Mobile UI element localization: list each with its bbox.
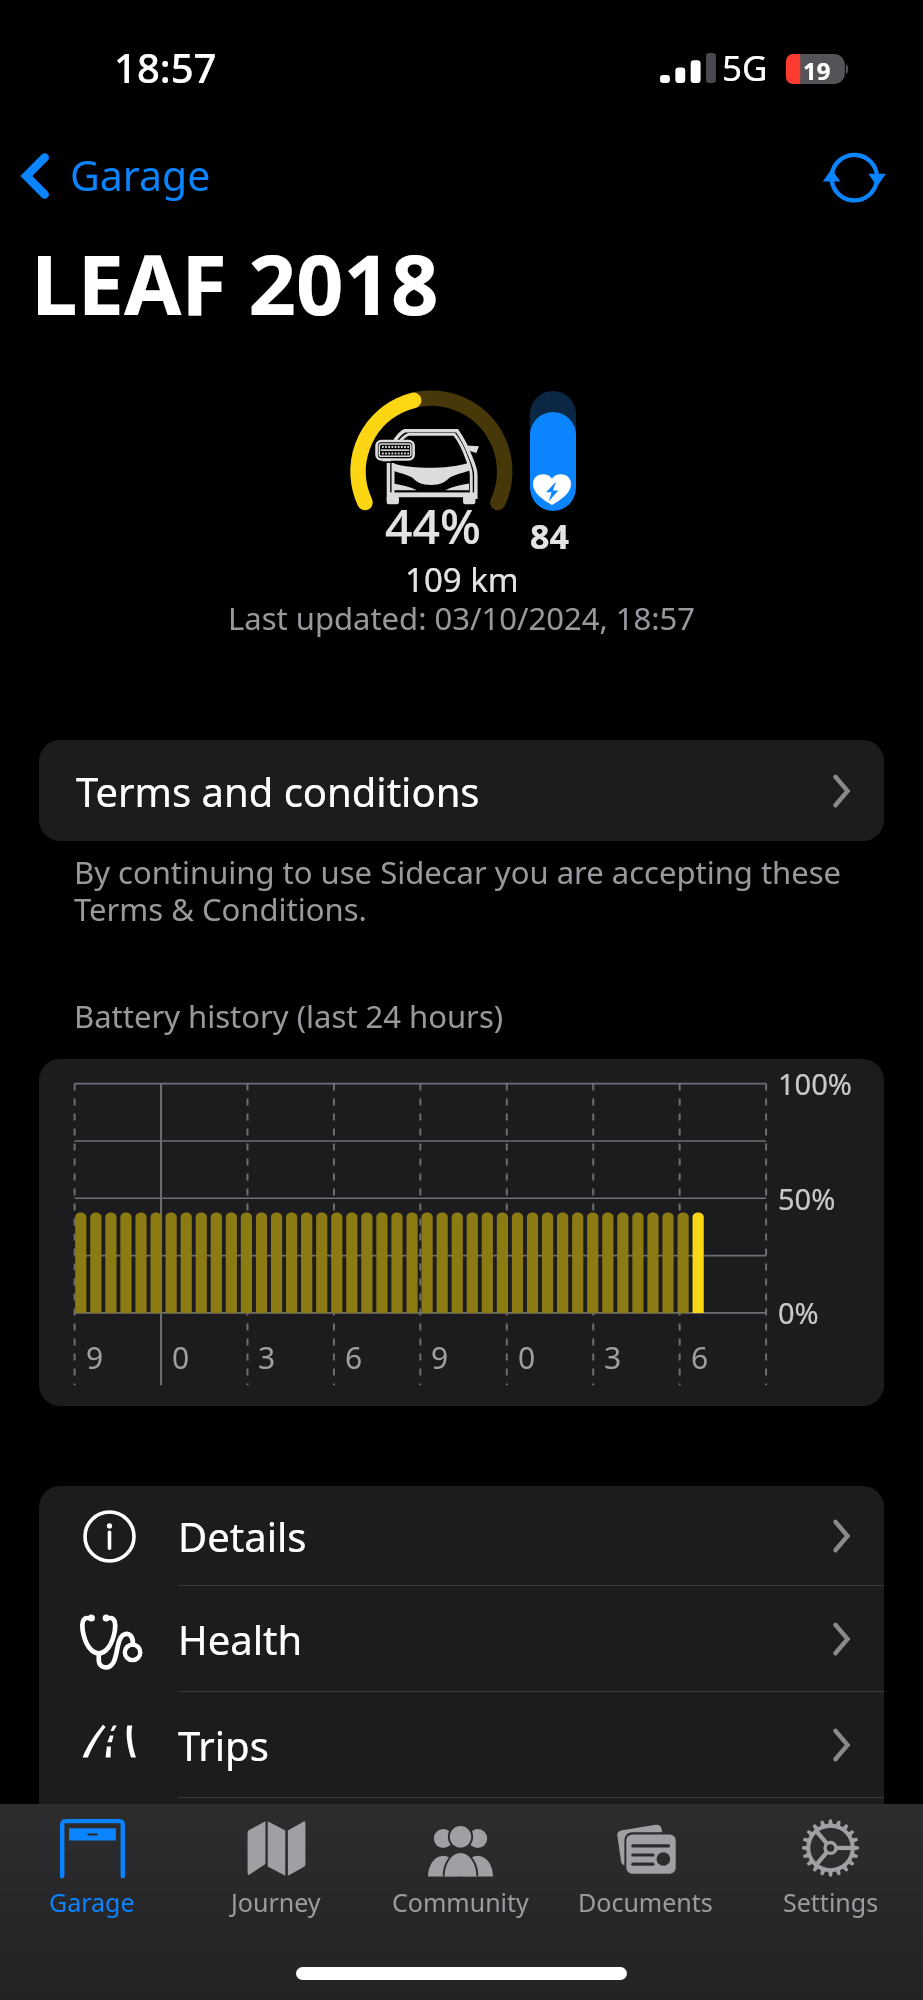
button[interactable]: Garage xyxy=(8,144,225,216)
staticText: LEAF 2018 xyxy=(31,226,439,339)
staticText: 84 xyxy=(530,513,569,559)
button[interactable]: Garage xyxy=(0,1804,184,1929)
staticText: Garage xyxy=(49,1885,135,1919)
button[interactable]: Documents xyxy=(553,1804,738,1929)
staticText: Garage xyxy=(70,147,211,203)
staticText: 50% xyxy=(778,1179,836,1218)
staticText: Details xyxy=(178,1509,832,1563)
staticText: 6 xyxy=(345,1337,363,1378)
staticText: Last updated: 03/10/2024, 18:57 xyxy=(228,597,696,639)
button[interactable]: Trips xyxy=(39,1692,884,1797)
staticText: 3 xyxy=(258,1337,276,1378)
staticText: 19 xyxy=(803,54,831,84)
staticText: 44% xyxy=(385,493,481,558)
staticText: By continuing to use Sidecar you are acc… xyxy=(74,851,842,930)
button[interactable]: Journey xyxy=(184,1804,368,1929)
button[interactable]: Refresh xyxy=(815,144,887,216)
button[interactable]: Details xyxy=(39,1486,884,1585)
staticText: 0% xyxy=(778,1293,819,1332)
staticText: 18:57 xyxy=(114,40,217,94)
staticText: 5G xyxy=(722,44,768,92)
button[interactable]: Terms and conditions xyxy=(39,740,884,841)
button[interactable]: Settings xyxy=(738,1804,923,1929)
button[interactable]: Community xyxy=(368,1804,553,1929)
staticText: Trips xyxy=(178,1718,832,1772)
staticText: 9 xyxy=(431,1337,449,1378)
staticText: Community xyxy=(392,1885,529,1919)
staticText: Settings xyxy=(783,1885,879,1919)
staticText: Health xyxy=(178,1612,832,1666)
staticText: Battery history (last 24 hours) xyxy=(74,995,504,1037)
staticText: 3 xyxy=(604,1337,622,1378)
button[interactable]: Health xyxy=(39,1586,884,1691)
staticText: 9 xyxy=(86,1337,104,1378)
staticText: 109 km xyxy=(405,557,519,602)
staticText: Documents xyxy=(578,1885,713,1919)
staticText: Journey xyxy=(231,1885,321,1919)
staticText: 0 xyxy=(172,1337,190,1378)
staticText: 0 xyxy=(518,1337,536,1378)
staticText: 100% xyxy=(778,1064,852,1103)
staticText: 6 xyxy=(691,1337,709,1378)
staticText: Terms and conditions xyxy=(76,764,832,818)
